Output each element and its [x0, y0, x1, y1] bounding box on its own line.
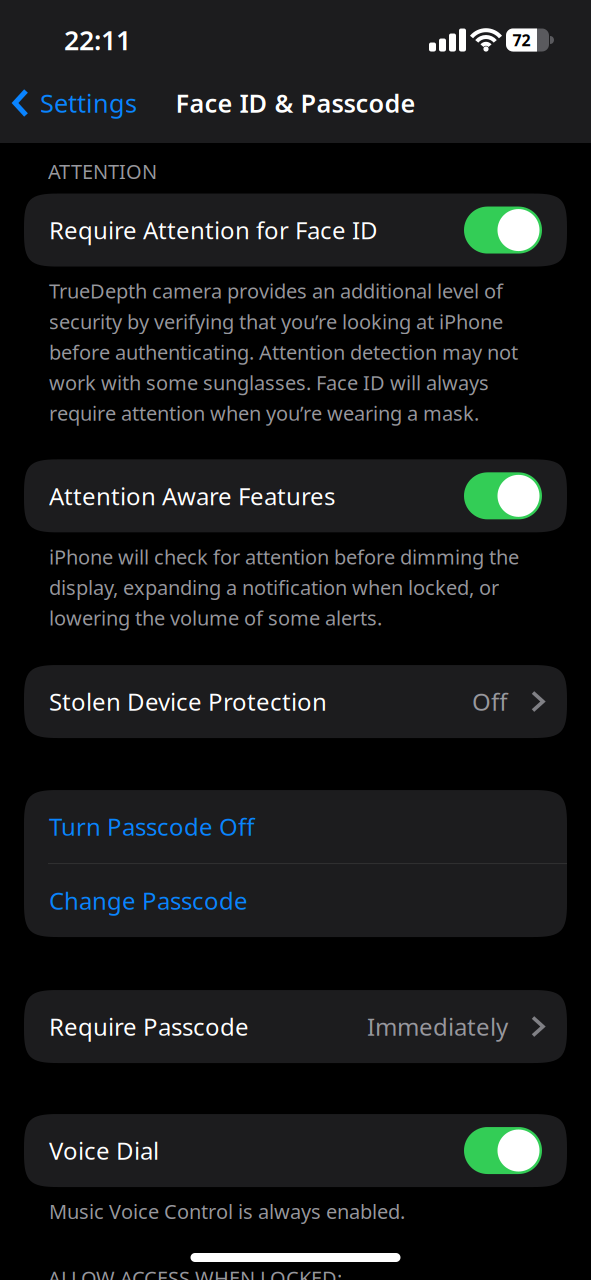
staticText: Attention Aware Features: [49, 480, 335, 512]
staticText: TrueDepth camera provides an additional …: [49, 278, 503, 304]
staticText: Face ID & Passcode: [175, 86, 415, 120]
staticText: Change Passcode: [49, 885, 248, 916]
staticText: 72: [512, 29, 530, 51]
staticText: Turn Passcode Off: [49, 811, 255, 842]
button[interactable]: Back to Settings: [0, 86, 137, 120]
button[interactable]: Require Attention for Face ID: [464, 207, 542, 254]
button[interactable]: Voice Dial: [464, 1127, 542, 1174]
staticText: before authenticating. Attention detecti…: [49, 339, 518, 365]
staticText: Stolen Device Protection: [49, 686, 327, 717]
staticText: display, expanding a notification when l…: [49, 574, 499, 600]
staticText: Music Voice Control is always enabled.: [49, 1198, 405, 1225]
button[interactable]: Stolen Device Protection: [24, 665, 567, 738]
button[interactable]: Attention Aware Features: [464, 472, 542, 519]
staticText: Require Attention for Face ID: [49, 214, 378, 246]
button[interactable]: Turn Passcode Off: [24, 790, 567, 863]
staticText: Off: [472, 686, 508, 717]
button[interactable]: Change Passcode: [24, 864, 567, 937]
staticText: Require Passcode: [49, 1011, 249, 1042]
staticText: ATTENTION: [48, 158, 157, 185]
staticText: require attention when you’re wearing a …: [49, 400, 479, 426]
staticText: ALLOW ACCESS WHEN LOCKED:: [48, 1265, 342, 1280]
staticText: Settings: [40, 86, 137, 120]
staticText: iPhone will check for attention before d…: [49, 543, 519, 570]
staticText: Voice Dial: [49, 1135, 159, 1166]
staticText: security by verifying that you’re lookin…: [49, 308, 503, 335]
staticText: 22:11: [64, 22, 131, 58]
staticText: Immediately: [367, 1011, 508, 1042]
staticText: lowering the volume of some alerts.: [49, 604, 382, 631]
button[interactable]: Require Passcode: [24, 990, 567, 1063]
staticText: work with some sunglasses. Face ID will …: [49, 369, 489, 396]
